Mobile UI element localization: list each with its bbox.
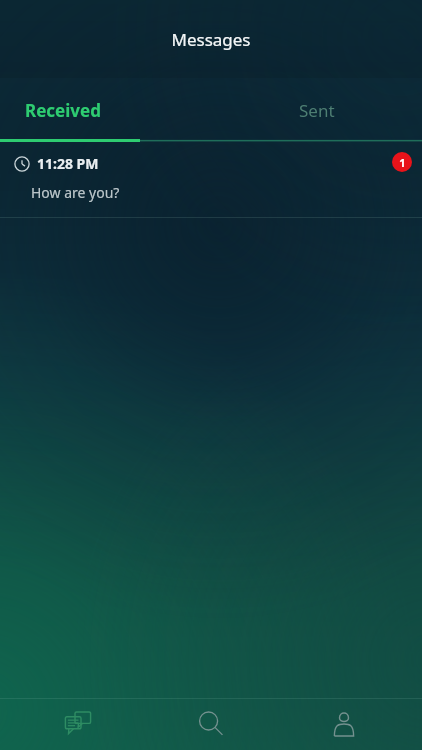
- button[interactable]: Sent: [211, 78, 422, 142]
- staticText: Sent: [299, 99, 335, 122]
- staticText: Messages: [171, 28, 251, 51]
- button[interactable]: Search: [156, 698, 266, 750]
- button[interactable]: Profile: [289, 698, 399, 750]
- staticText: 1: [399, 155, 406, 170]
- staticText: 11:28 PM: [37, 154, 99, 173]
- button[interactable]: 11:28 PM: [0, 142, 422, 218]
- button[interactable]: Messages: [23, 698, 133, 750]
- button[interactable]: Received: [0, 78, 211, 142]
- staticText: Received: [25, 99, 101, 122]
- staticText: How are you?: [31, 183, 120, 202]
